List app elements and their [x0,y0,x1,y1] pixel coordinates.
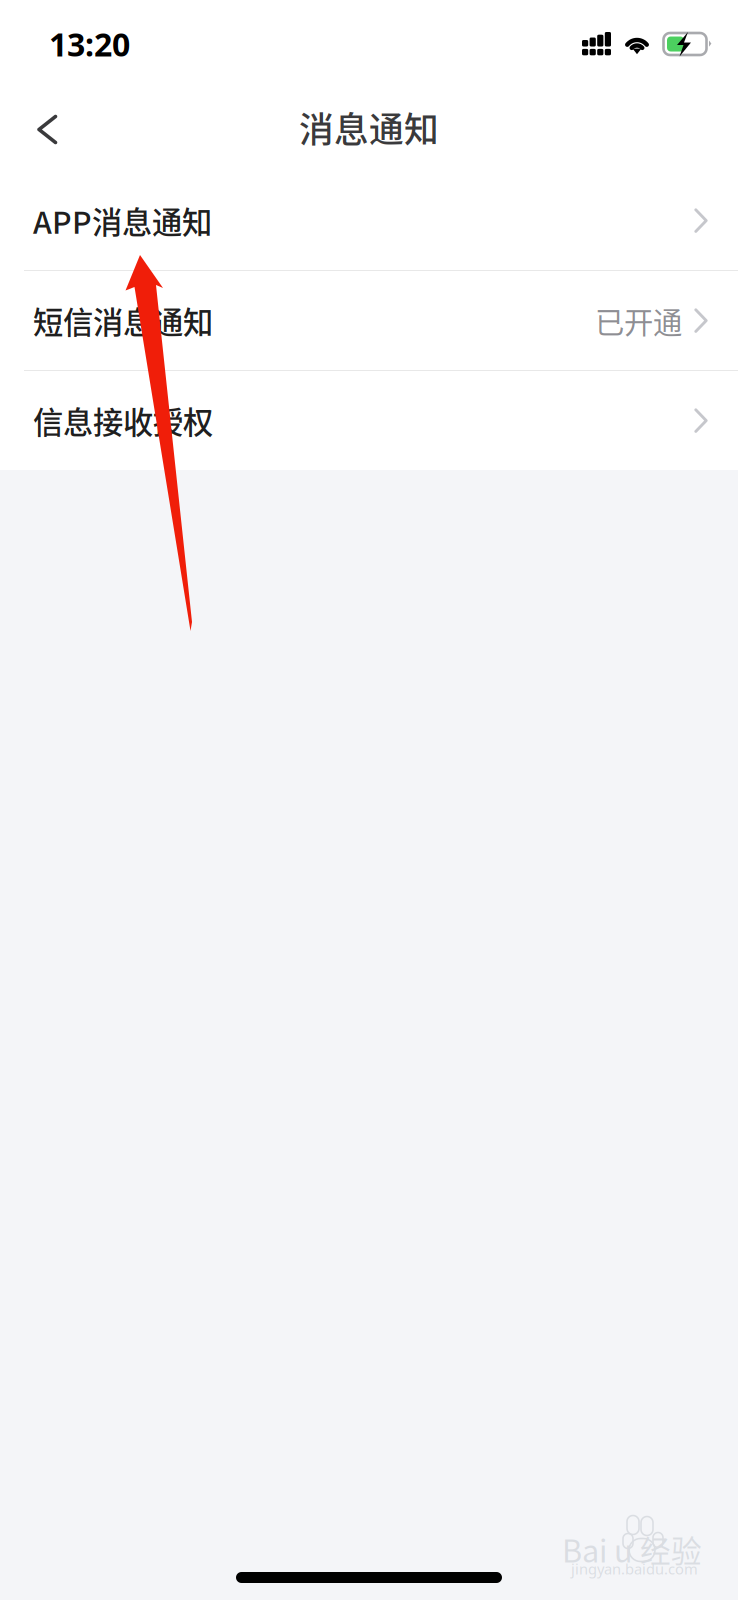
staticText: 短信消息通知 [33,299,213,342]
staticText: APP消息通知 [33,199,212,242]
staticText: jingyan.baidu.com [571,1559,698,1578]
staticText: 已开通 [595,299,682,342]
staticText: Bai u 经验 [562,1527,702,1571]
button[interactable]: Back [0,88,82,170]
staticText: 信息接收授权 [33,399,213,442]
staticText: 13:20 [49,23,130,65]
button[interactable]: 信息接收授权 [0,371,738,470]
staticText: 消息通知 [299,102,439,153]
button[interactable]: 短信消息通知 [0,271,738,370]
button[interactable]: APP消息通知 [0,171,738,270]
